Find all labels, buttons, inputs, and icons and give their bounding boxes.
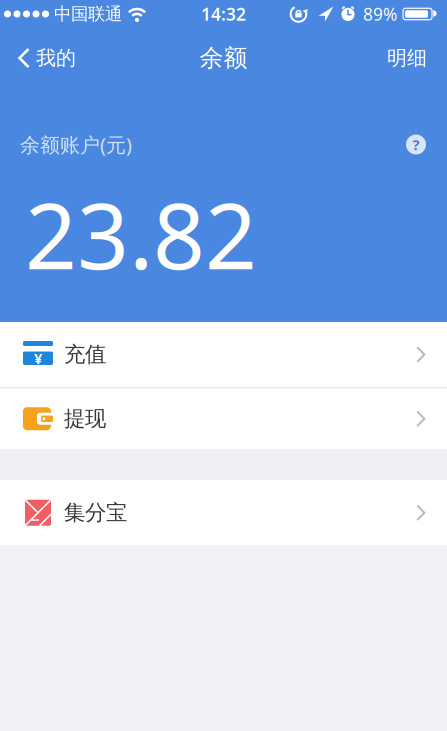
staticText: 23.82 xyxy=(25,174,257,294)
staticText: 余额 xyxy=(199,43,247,73)
staticText: 89% xyxy=(363,2,397,25)
staticText: ? xyxy=(412,135,419,154)
staticText: 集分宝 xyxy=(64,500,127,526)
button[interactable]: ¥ xyxy=(0,322,447,387)
button[interactable]: 帮助 xyxy=(406,134,426,154)
staticText: 14:32 xyxy=(201,2,246,25)
staticText: 充值 xyxy=(64,341,106,368)
staticText: ¥ xyxy=(34,348,42,368)
button[interactable]: 明细 xyxy=(387,28,447,88)
staticText: 提现 xyxy=(64,406,106,432)
staticText: 我的 xyxy=(36,46,76,70)
staticText: 明细 xyxy=(387,46,427,70)
staticText: 中国联通 xyxy=(54,3,122,25)
button[interactable]: 集分宝 xyxy=(0,480,447,545)
staticText: 余额账户(元) xyxy=(20,131,132,158)
button[interactable]: 提现 xyxy=(0,388,447,449)
button[interactable]: 我的 xyxy=(0,28,76,88)
